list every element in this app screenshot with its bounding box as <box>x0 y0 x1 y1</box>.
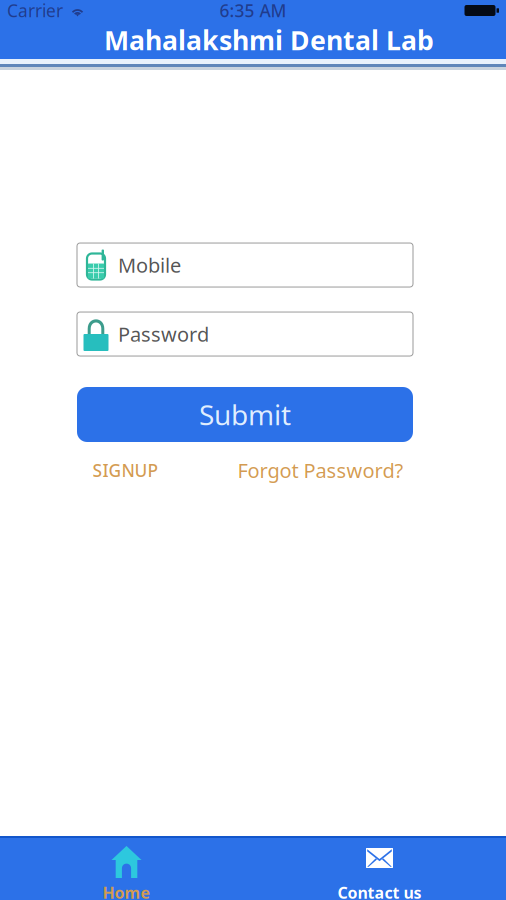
button[interactable]: Password <box>77 312 413 356</box>
staticText: Mahalakshmi Dental Lab <box>104 22 434 58</box>
button[interactable]: Contact us <box>253 838 506 900</box>
staticText: Mobile <box>118 252 181 278</box>
button[interactable]: Forgot Password? <box>237 453 403 488</box>
staticText: Contact us <box>337 882 421 900</box>
staticText: 6:35 AM <box>219 0 286 22</box>
button[interactable]: Submit <box>77 387 413 442</box>
staticText: Carrier <box>7 0 63 22</box>
staticText: SIGNUP <box>92 459 158 482</box>
staticText: Password <box>118 321 209 347</box>
button[interactable]: SIGNUP <box>92 455 158 486</box>
staticText: Submit <box>199 396 291 433</box>
staticText: Home <box>102 882 150 900</box>
button[interactable]: Mobile <box>77 243 413 287</box>
button[interactable]: Home <box>0 838 253 900</box>
staticText: Forgot Password? <box>237 457 403 484</box>
